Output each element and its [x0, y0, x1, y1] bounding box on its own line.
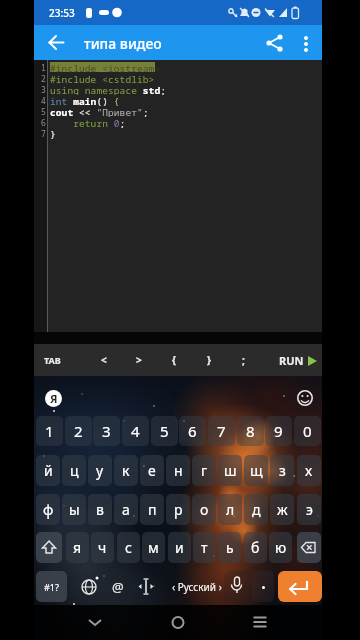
button[interactable]: б — [244, 532, 267, 563]
button[interactable]: о — [192, 494, 216, 525]
staticText: #include <cstdlib> — [50, 73, 155, 84]
button[interactable]: @ — [107, 571, 129, 602]
button[interactable]: 6 — [179, 416, 206, 446]
button[interactable]: м — [142, 532, 165, 563]
button[interactable]: > — [127, 344, 151, 376]
button[interactable]: 4 — [122, 416, 149, 446]
staticText: TAB — [44, 354, 61, 366]
button[interactable]: 7 — [208, 416, 235, 446]
button[interactable] — [297, 532, 321, 563]
staticText: д — [252, 500, 261, 519]
button[interactable]: < — [92, 344, 116, 376]
button[interactable]: д — [244, 494, 268, 525]
button[interactable]: Я — [45, 390, 62, 407]
button[interactable] — [262, 30, 288, 56]
staticText: м — [148, 538, 159, 557]
button[interactable]: #1? — [36, 571, 67, 602]
button[interactable]: у — [88, 455, 112, 486]
staticText: 2 — [41, 73, 46, 84]
staticText: ч — [98, 538, 107, 557]
button[interactable]: э — [297, 494, 321, 525]
button[interactable]: ф — [36, 494, 60, 525]
button[interactable]: 0 — [294, 416, 321, 446]
button[interactable] — [294, 30, 320, 56]
button[interactable]: е — [140, 455, 164, 486]
button[interactable]: 1 — [36, 416, 63, 446]
button[interactable]: RUN — [274, 344, 322, 376]
staticText: ; — [242, 353, 245, 367]
button[interactable]: т — [193, 532, 216, 563]
staticText: г — [201, 461, 208, 480]
button[interactable]: } — [197, 344, 221, 376]
button[interactable]: р — [166, 494, 190, 525]
staticText: 1 — [45, 421, 54, 441]
staticText: а — [122, 500, 130, 519]
staticText: щ — [250, 461, 263, 480]
button[interactable]: х — [297, 455, 321, 486]
staticText: #include <iostream> — [50, 62, 161, 73]
button[interactable]: ы — [62, 494, 86, 525]
button[interactable]: ю — [269, 532, 292, 563]
button[interactable]: щ — [244, 455, 268, 486]
button[interactable]: з — [270, 455, 294, 486]
button[interactable]: к — [114, 455, 138, 486]
button[interactable]: ц — [62, 455, 86, 486]
button[interactable]: 5 — [151, 416, 178, 446]
button[interactable] — [252, 571, 274, 602]
staticText: с — [125, 538, 132, 557]
button[interactable] — [278, 571, 322, 602]
button[interactable] — [246, 608, 274, 636]
staticText: 5 — [160, 421, 169, 441]
button[interactable]: 2 — [65, 416, 92, 446]
button[interactable]: TAB — [38, 344, 66, 376]
staticText: ф — [43, 500, 54, 519]
staticText: 2 — [74, 421, 83, 441]
staticText: и — [175, 538, 184, 557]
button[interactable]: и — [168, 532, 191, 563]
button[interactable]: 3 — [93, 416, 120, 446]
button[interactable]: л — [218, 494, 242, 525]
button[interactable]: ь — [218, 532, 241, 563]
button[interactable]: ч — [91, 532, 114, 563]
staticText: 5 — [41, 106, 46, 117]
button[interactable]: й — [36, 455, 60, 486]
button[interactable] — [224, 571, 250, 602]
staticText: 8 — [246, 421, 255, 441]
button[interactable]: а — [114, 494, 138, 525]
button[interactable] — [135, 571, 157, 602]
button[interactable] — [164, 608, 192, 636]
staticText: в — [96, 500, 104, 519]
button[interactable]: ш — [218, 455, 242, 486]
staticText: о — [200, 500, 209, 519]
button[interactable] — [81, 608, 109, 636]
button[interactable] — [78, 571, 100, 602]
button[interactable]: н — [166, 455, 190, 486]
staticText: cout << "Привет"; — [50, 106, 149, 117]
button[interactable] — [36, 532, 62, 563]
button[interactable]: ; — [231, 344, 255, 376]
button[interactable] — [296, 389, 314, 407]
button[interactable] — [44, 30, 69, 55]
staticText: using namespace std; — [50, 84, 167, 95]
staticText: н — [174, 461, 183, 480]
button[interactable]: п — [140, 494, 164, 525]
staticText: 3 — [41, 84, 46, 95]
staticText: б — [251, 538, 260, 557]
button[interactable]: 9 — [265, 416, 292, 446]
button[interactable]: я — [66, 532, 89, 563]
staticText: 1 — [41, 62, 46, 73]
button[interactable]: в — [88, 494, 112, 525]
staticText: у — [96, 461, 104, 480]
button[interactable]: ‹ Русский › — [160, 571, 234, 602]
staticText: х — [305, 461, 313, 480]
staticText: 3 — [102, 421, 111, 441]
button[interactable]: с — [117, 532, 140, 563]
staticText: я — [73, 538, 82, 557]
button[interactable]: г — [192, 455, 216, 486]
staticText: { — [172, 353, 176, 367]
staticText: к — [122, 461, 130, 480]
staticText: 0 — [303, 421, 312, 441]
button[interactable]: ж — [270, 494, 294, 525]
button[interactable]: { — [162, 344, 186, 376]
button[interactable]: 8 — [237, 416, 264, 446]
